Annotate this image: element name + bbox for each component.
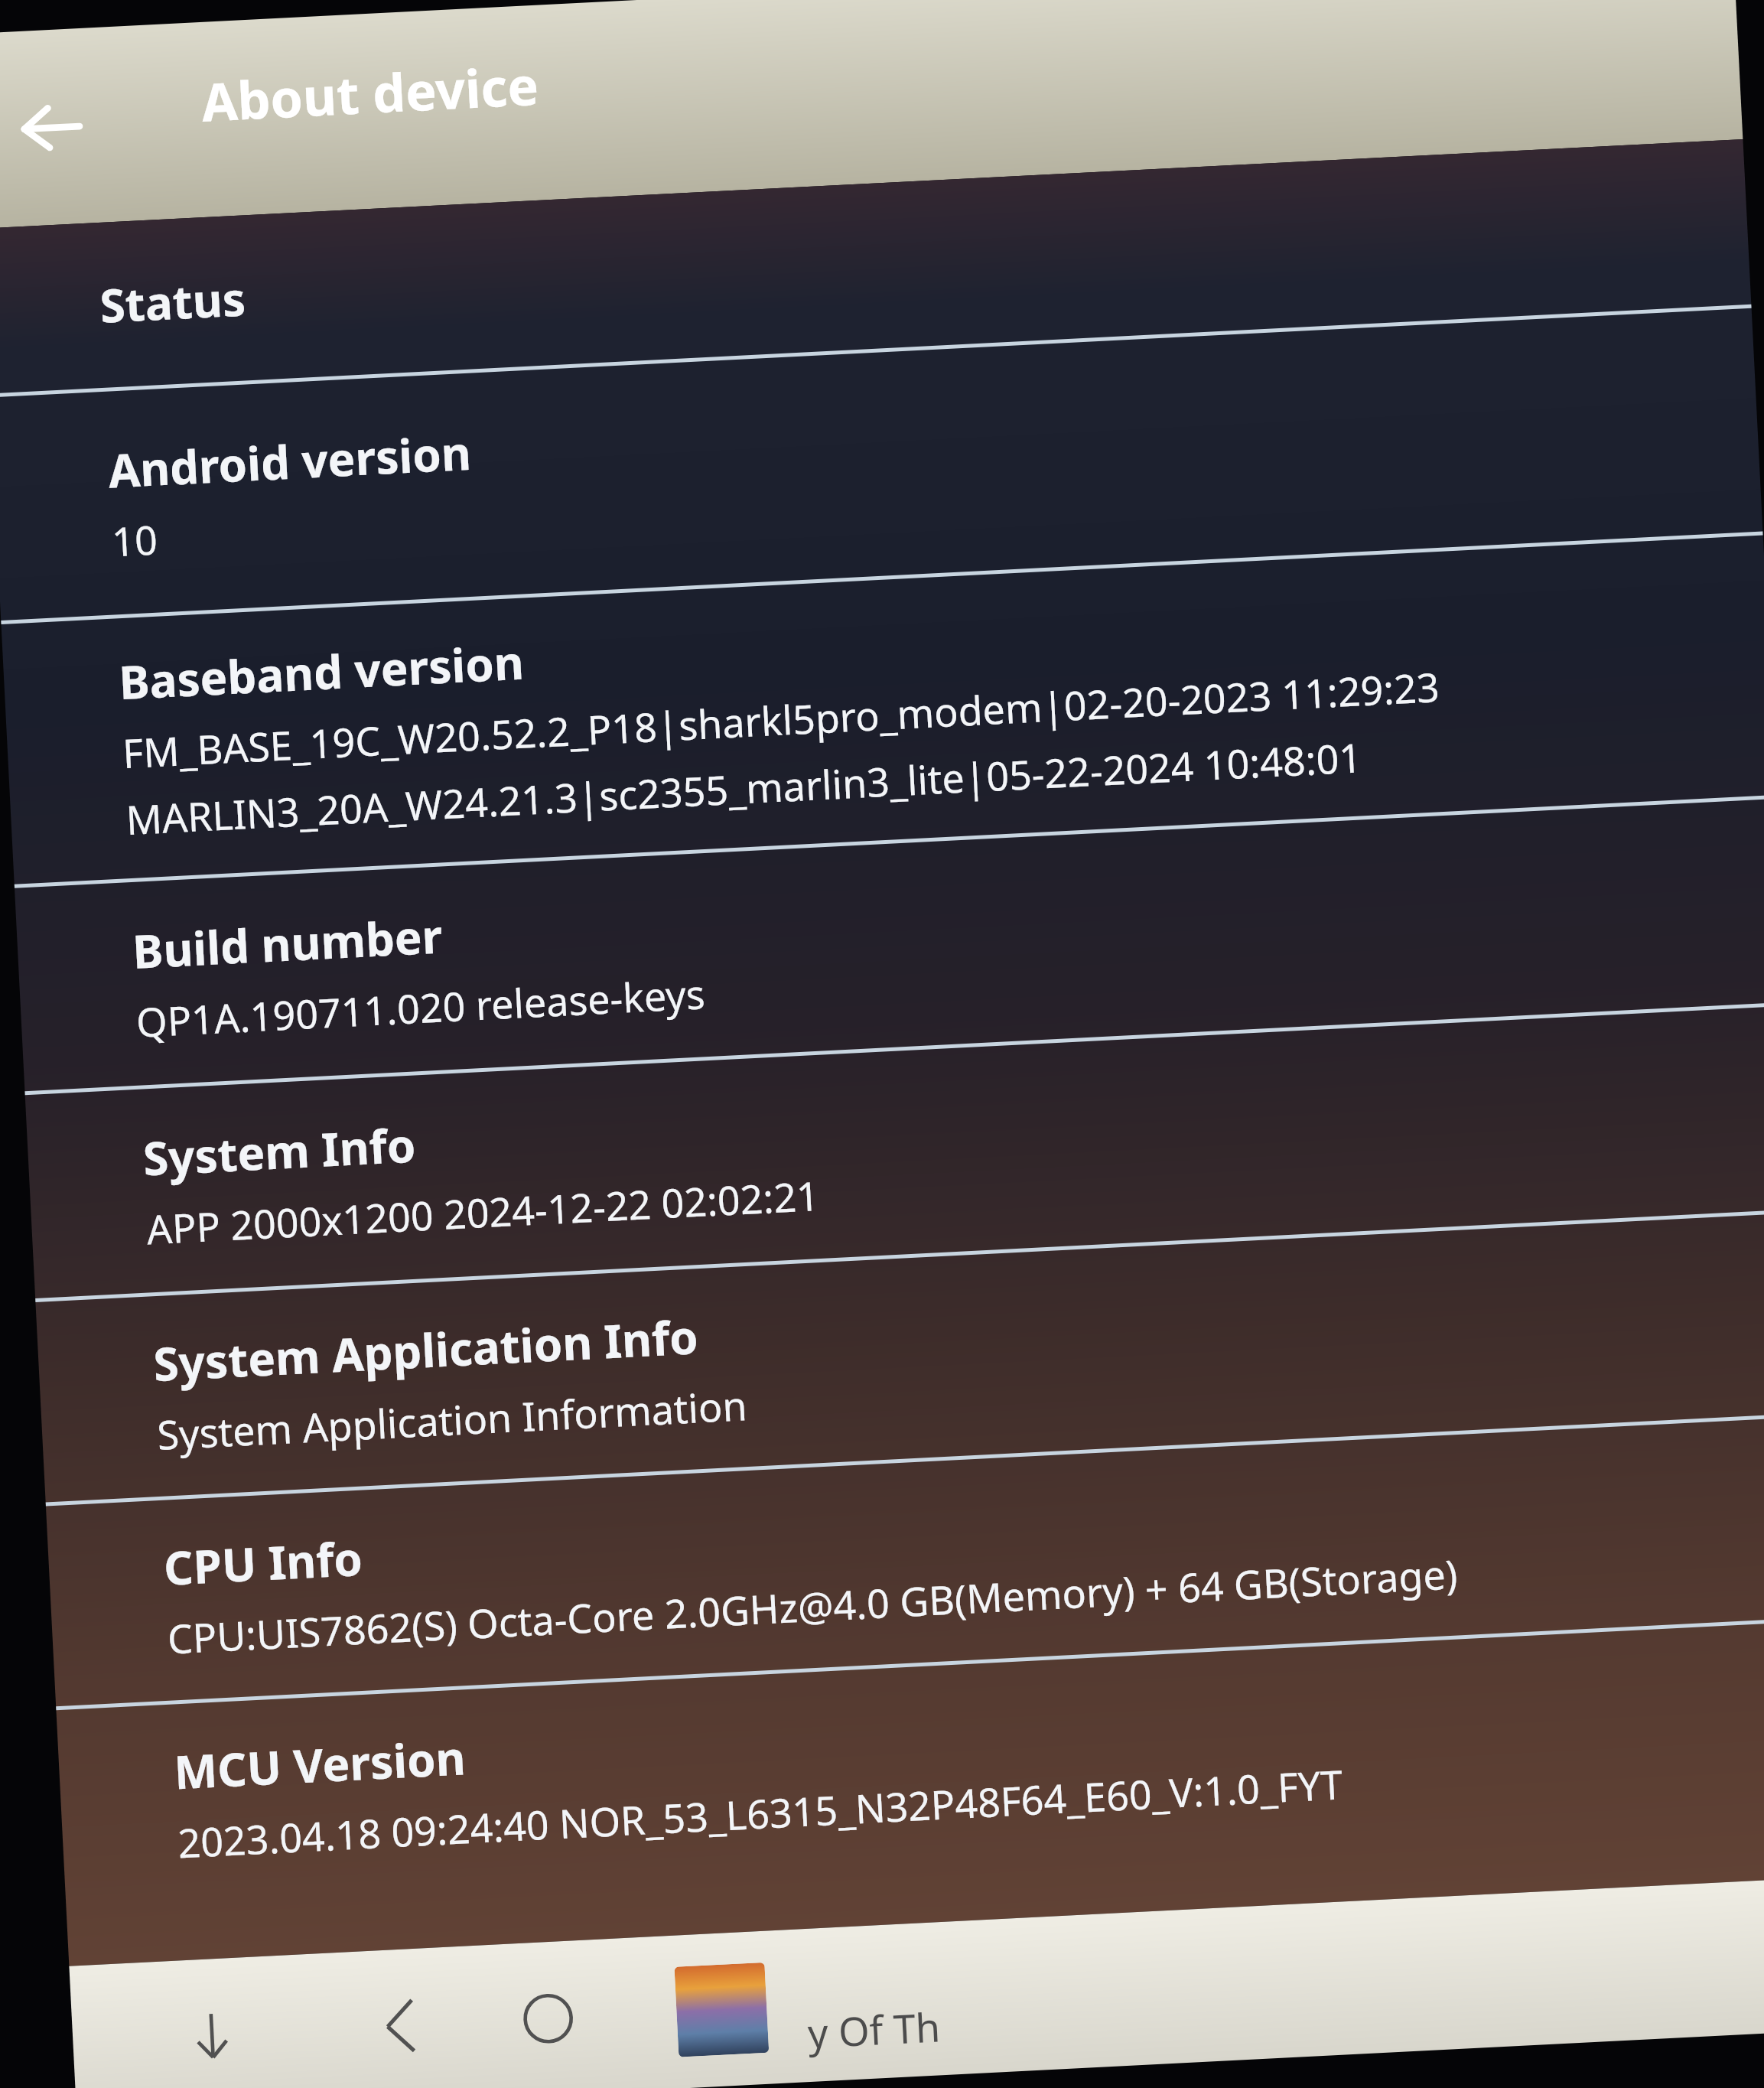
- button[interactable]: Android version: [0, 308, 1763, 621]
- button[interactable]: Baseband version: [1, 535, 1764, 884]
- button[interactable]: System Application Info: [35, 1213, 1764, 1502]
- staticText: System Application Information: [156, 1377, 748, 1461]
- staticText: Build number: [131, 904, 444, 982]
- button[interactable]: Now playing: [674, 1962, 769, 2057]
- staticText: CPU:UIS7862(S) Octa-Core 2.0GHz@4.0 GB(M…: [166, 1546, 1459, 1666]
- staticText: System Application Info: [152, 1305, 700, 1395]
- staticText: Android version: [107, 421, 473, 502]
- staticText: 2023.04.18 09:24:40 NOR_53_L6315_N32P48F…: [176, 1756, 1344, 1869]
- staticText: 10: [110, 512, 159, 568]
- staticText: About device: [200, 49, 540, 137]
- button[interactable]: Build number: [15, 799, 1764, 1091]
- staticText: y Of Th: [806, 1999, 942, 2060]
- button[interactable]: Home: [498, 1969, 598, 2068]
- staticText: FM_BASE_19C_W20.52.2_P18|sharkl5pro_mode…: [121, 659, 1441, 780]
- button[interactable]: Collapse: [162, 1986, 262, 2085]
- button[interactable]: CPU Info: [46, 1417, 1764, 1706]
- button[interactable]: Status: [0, 139, 1751, 394]
- button[interactable]: MCU Version: [56, 1621, 1764, 1910]
- button[interactable]: Back: [353, 1976, 453, 2076]
- staticText: Baseband version: [117, 630, 526, 713]
- staticText: QP1A.190711.020 release-keys: [135, 966, 707, 1049]
- staticText: MCU Version: [173, 1726, 468, 1803]
- button[interactable]: System Info: [25, 1006, 1764, 1298]
- staticText: MARLIN3_20A_W24.21.3|sc2355_marlin3_lite…: [125, 729, 1363, 846]
- staticText: Status: [98, 267, 247, 337]
- staticText: CPU Info: [162, 1526, 364, 1599]
- staticText: System Info: [142, 1113, 417, 1189]
- staticText: APP 2000x1200 2024-12-22 02:02:21: [145, 1168, 820, 1256]
- button[interactable]: Navigate up: [0, 73, 106, 182]
